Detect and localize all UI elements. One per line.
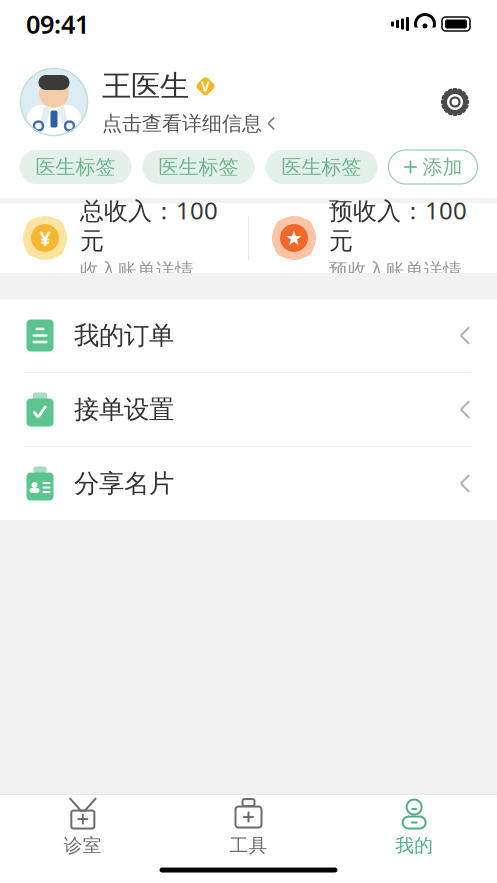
- staticText: 工具: [229, 834, 267, 857]
- staticText: 分享名片: [74, 468, 174, 499]
- staticText: 预收入：100元: [329, 194, 467, 256]
- staticText: ★: [285, 227, 303, 249]
- staticText: 医生标签: [35, 155, 115, 179]
- button[interactable]: 王医生: [20, 68, 275, 136]
- button[interactable]: 医生标签: [265, 150, 377, 184]
- staticText: 收入账单详情: [80, 259, 194, 282]
- staticText: 09:41: [26, 7, 89, 41]
- staticText: 点击查看详细信息: [102, 111, 262, 136]
- staticText: 王医生: [102, 68, 189, 104]
- button[interactable]: 添加: [388, 150, 477, 184]
- button[interactable]: 接单设置: [0, 373, 497, 447]
- staticText: 添加: [422, 155, 462, 179]
- staticText: 诊室: [64, 834, 102, 857]
- button[interactable]: 我的: [331, 799, 497, 857]
- staticText: 预收入账单详情: [329, 259, 462, 282]
- staticText: 我的订单: [74, 320, 174, 351]
- button[interactable]: 分享名片: [0, 447, 497, 520]
- button[interactable]: 医生标签: [19, 150, 131, 184]
- button[interactable]: Settings: [433, 80, 477, 124]
- button[interactable]: 诊室: [0, 799, 166, 857]
- staticText: 接单设置: [74, 394, 174, 425]
- staticText: ¥: [39, 225, 50, 251]
- button[interactable]: ★: [271, 203, 497, 273]
- button[interactable]: 工具: [166, 799, 331, 857]
- staticText: 医生标签: [281, 155, 361, 179]
- button[interactable]: ¥: [22, 203, 248, 273]
- staticText: 总收入：100元: [80, 194, 218, 256]
- button[interactable]: 医生标签: [142, 150, 254, 184]
- staticText: V: [201, 77, 210, 95]
- button[interactable]: 我的订单: [0, 299, 497, 373]
- staticText: 医生标签: [158, 155, 238, 179]
- staticText: 我的: [395, 834, 433, 857]
